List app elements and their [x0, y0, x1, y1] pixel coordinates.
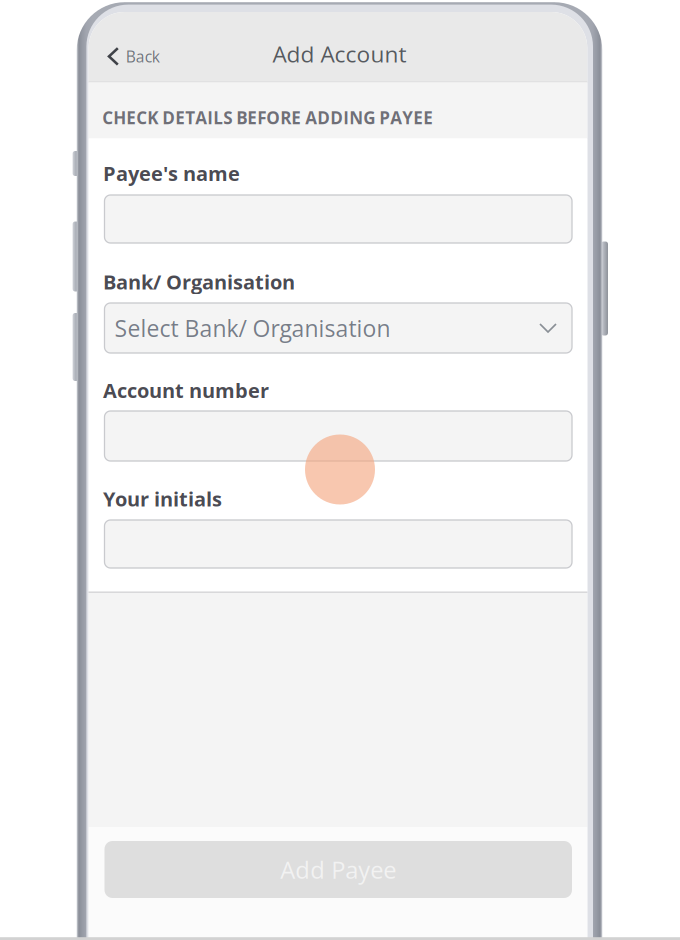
- staticText: Account number: [103, 376, 269, 404]
- staticText: Add Account: [272, 38, 406, 69]
- staticText: Bank/ Organisation: [103, 268, 295, 295]
- staticText: Back: [126, 46, 160, 67]
- staticText: Add Payee: [280, 853, 396, 886]
- button[interactable]: Select Bank/ Organisation: [104, 303, 572, 353]
- staticText: CHECK DETAILS BEFORE ADDING PAYEE: [102, 106, 433, 129]
- button[interactable]: [104, 520, 572, 568]
- staticText: Payee's name: [103, 160, 240, 187]
- button[interactable]: [104, 195, 572, 243]
- staticText: Select Bank/ Organisation: [114, 312, 390, 344]
- staticText: Your initials: [103, 485, 222, 512]
- button[interactable]: [104, 411, 572, 461]
- button[interactable]: Back: [0, 0, 680, 940]
